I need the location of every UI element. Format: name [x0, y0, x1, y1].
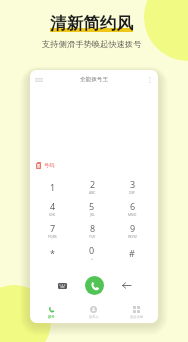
staticText: 5	[89, 200, 95, 212]
staticText: *	[50, 247, 55, 259]
staticText: ABC	[89, 190, 96, 195]
staticText: 8	[90, 222, 96, 234]
button[interactable]: *	[33, 242, 72, 264]
staticText: 0	[89, 244, 95, 256]
staticText: 号码	[44, 162, 55, 169]
button[interactable]: #	[112, 242, 152, 264]
staticText: TUV	[89, 234, 96, 239]
staticText: 7	[50, 222, 56, 234]
button[interactable]: 6	[112, 198, 152, 220]
staticText: 支持侧滑手势唤起快速拨号	[42, 39, 142, 49]
button[interactable]: Hide keypad	[46, 273, 78, 298]
button[interactable]: 联系人	[72, 302, 115, 323]
button[interactable]: 1	[33, 176, 72, 198]
button[interactable]: 7	[33, 220, 72, 242]
staticText: 4	[50, 200, 56, 212]
button[interactable]: 4	[33, 198, 72, 220]
button[interactable]: Menu	[32, 73, 45, 86]
button[interactable]: 8	[72, 220, 112, 242]
button[interactable]: 5	[72, 198, 112, 220]
staticText: 3	[130, 178, 136, 190]
button[interactable]: 2	[72, 176, 112, 198]
button[interactable]: 拨号	[30, 302, 72, 323]
button[interactable]: 0	[72, 242, 112, 264]
staticText: 更多功能	[130, 315, 144, 319]
staticText: 全能拨号王	[80, 76, 108, 83]
button[interactable]: 3	[112, 176, 152, 198]
staticText: +	[91, 256, 93, 261]
staticText: 1	[50, 181, 56, 193]
staticText: DEF	[129, 190, 136, 195]
staticText: #	[129, 247, 135, 259]
staticText: 拨号	[48, 315, 55, 319]
button[interactable]: Backspace	[110, 273, 142, 298]
staticText: MNO	[128, 212, 137, 217]
staticText: 清新简约风	[50, 13, 133, 34]
staticText: 6	[130, 200, 136, 212]
staticText: 9	[130, 222, 136, 234]
button[interactable]: More options	[143, 73, 156, 86]
staticText: 2	[90, 178, 96, 190]
staticText: GHI	[49, 212, 56, 217]
staticText: JKL	[90, 212, 95, 217]
button[interactable]: 更多功能	[115, 302, 158, 323]
staticText: 联系人	[89, 315, 99, 319]
staticText: WXYZ	[128, 234, 137, 239]
staticText: PQRS	[48, 234, 57, 239]
button[interactable]: 9	[112, 220, 152, 242]
button[interactable]: Call	[85, 276, 104, 295]
